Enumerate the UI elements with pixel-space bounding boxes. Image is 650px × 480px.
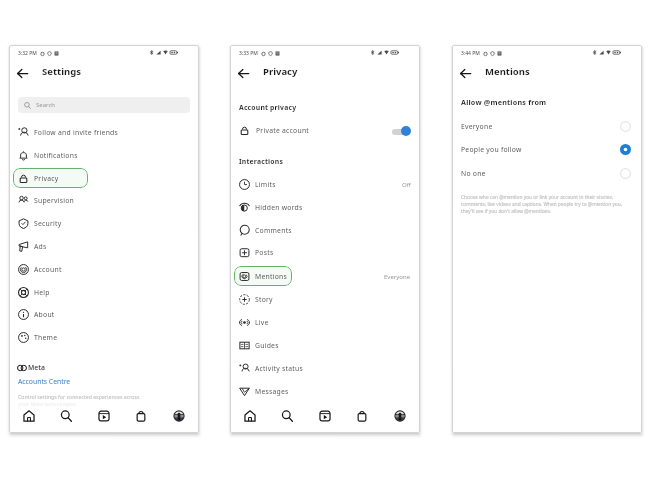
button[interactable]: Limits bbox=[230, 173, 420, 195]
staticText: Activity status bbox=[255, 364, 303, 373]
staticText: Meta bbox=[28, 363, 46, 372]
staticText: Account privacy bbox=[239, 103, 297, 112]
staticText: Limits bbox=[255, 180, 276, 189]
staticText: Off bbox=[402, 181, 411, 189]
button[interactable]: Search bbox=[280, 409, 294, 423]
button[interactable]: About bbox=[9, 303, 199, 325]
staticText: Interactions bbox=[239, 157, 284, 166]
staticText: Private account bbox=[256, 126, 310, 135]
button[interactable]: Back bbox=[457, 65, 473, 81]
button[interactable]: Posts bbox=[230, 241, 420, 263]
button[interactable]: Help bbox=[9, 281, 199, 303]
staticText: Messages bbox=[255, 387, 289, 396]
button[interactable]: People you follow bbox=[452, 138, 642, 160]
button[interactable]: Profile bbox=[393, 409, 407, 423]
staticText: 3:33 PM bbox=[239, 50, 258, 57]
button[interactable]: Guides bbox=[230, 334, 420, 356]
button[interactable]: Search bbox=[18, 97, 190, 113]
button[interactable]: Home bbox=[22, 409, 36, 423]
staticText: 3:44 PM bbox=[461, 50, 480, 57]
button[interactable]: Account bbox=[9, 258, 199, 280]
button[interactable]: Search bbox=[59, 409, 73, 423]
staticText: Guides bbox=[255, 341, 279, 350]
staticText: Ads bbox=[34, 242, 47, 251]
staticText: Control settings for connected experienc… bbox=[18, 393, 140, 400]
button[interactable]: Back bbox=[14, 65, 30, 81]
button[interactable]: Home bbox=[243, 409, 257, 423]
button[interactable]: Privacy bbox=[9, 167, 199, 189]
button[interactable]: Profile bbox=[172, 409, 186, 423]
button[interactable]: Theme bbox=[9, 326, 199, 348]
staticText: Privacy bbox=[34, 174, 59, 183]
staticText: People you follow bbox=[461, 145, 522, 154]
button[interactable]: Activity status bbox=[230, 357, 420, 379]
button[interactable]: Security bbox=[9, 212, 199, 234]
staticText: Account bbox=[34, 265, 62, 274]
staticText: Settings bbox=[42, 65, 81, 78]
button[interactable]: Supervision bbox=[9, 189, 199, 211]
staticText: Mentions bbox=[255, 272, 287, 281]
button[interactable]: Hidden words bbox=[230, 196, 420, 218]
staticText: Privacy bbox=[263, 65, 298, 78]
button[interactable]: Everyone bbox=[452, 115, 642, 137]
button[interactable]: Story bbox=[230, 288, 420, 310]
staticText: Hidden words bbox=[255, 203, 303, 212]
button[interactable]: Shop bbox=[134, 409, 148, 423]
staticText: Supervision bbox=[34, 196, 75, 205]
staticText: Notifications bbox=[34, 151, 78, 160]
staticText: Security bbox=[34, 219, 62, 228]
button[interactable]: Ads bbox=[9, 235, 199, 257]
button[interactable]: No one bbox=[452, 162, 642, 184]
button[interactable]: Private account bbox=[230, 119, 420, 141]
staticText: Mentions bbox=[485, 65, 530, 78]
staticText: Allow @mentions from bbox=[461, 97, 547, 107]
staticText: Help bbox=[34, 288, 50, 297]
staticText: Everyone bbox=[384, 273, 411, 281]
staticText: Live bbox=[255, 318, 269, 327]
staticText: Everyone bbox=[461, 122, 493, 131]
button[interactable]: Reels bbox=[97, 409, 111, 423]
staticText: Story bbox=[255, 295, 273, 304]
button[interactable]: Live bbox=[230, 311, 420, 333]
staticText: Theme bbox=[34, 333, 58, 342]
button[interactable]: Follow and invite friends bbox=[9, 121, 199, 143]
staticText: About bbox=[34, 310, 55, 319]
staticText: No one bbox=[461, 169, 486, 178]
staticText: 3:32 PM bbox=[18, 50, 37, 57]
button[interactable]: Accounts Centre bbox=[18, 377, 71, 386]
button[interactable]: Shop bbox=[355, 409, 369, 423]
staticText: Follow and invite friends bbox=[34, 128, 119, 137]
staticText: Comments bbox=[255, 226, 292, 235]
staticText: Posts bbox=[255, 248, 274, 257]
button[interactable]: Reels bbox=[318, 409, 332, 423]
button[interactable]: Mentions bbox=[230, 265, 420, 287]
button[interactable]: Messages bbox=[230, 380, 420, 402]
staticText: Search bbox=[36, 101, 55, 109]
button[interactable]: Back bbox=[235, 65, 251, 81]
staticText: Choose who can @mention you or link your… bbox=[461, 194, 633, 215]
button[interactable]: Comments bbox=[230, 219, 420, 241]
button[interactable]: Notifications bbox=[9, 144, 199, 166]
staticText: your Meta technologies. bbox=[18, 400, 77, 407]
